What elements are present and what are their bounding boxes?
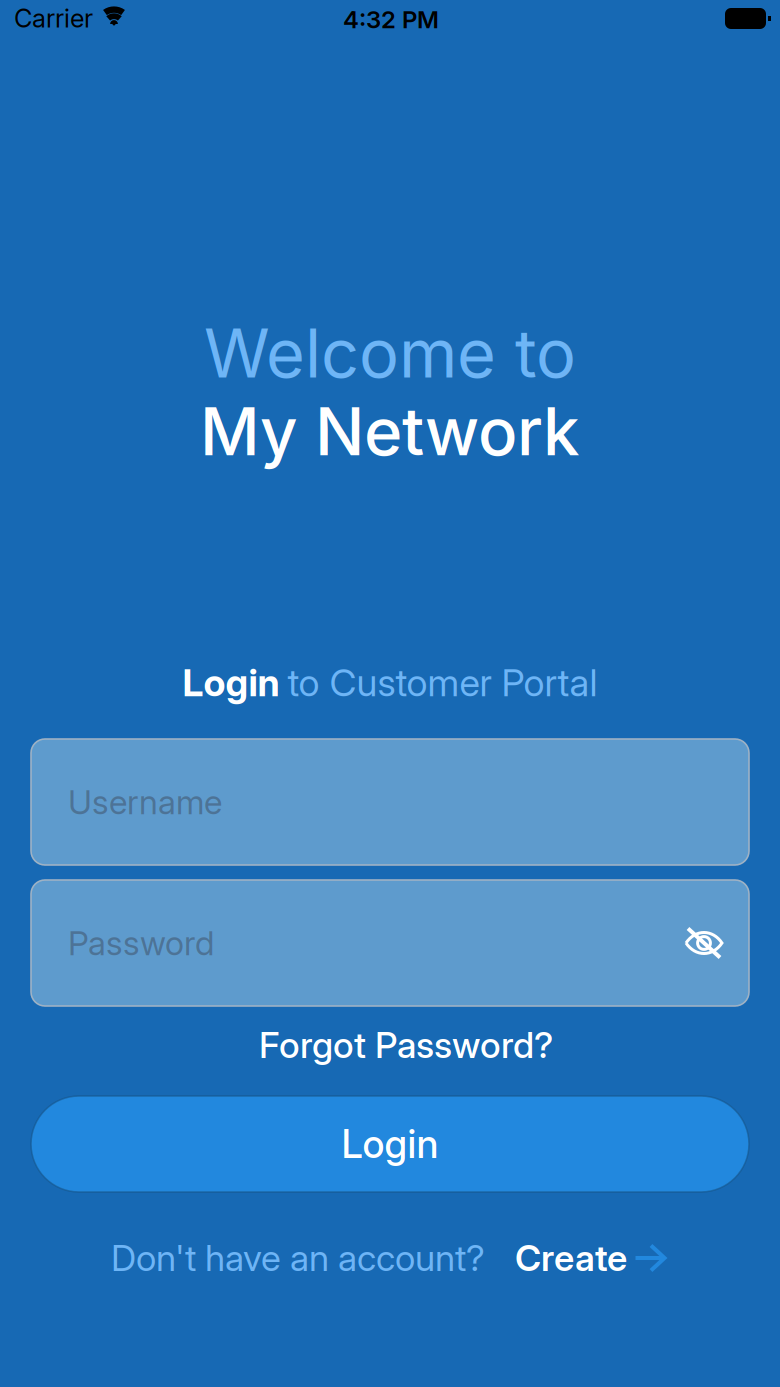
staticText: Welcome to bbox=[204, 313, 576, 394]
staticText: Login bbox=[182, 660, 287, 705]
button[interactable]: Create bbox=[515, 1232, 667, 1284]
staticText: Don't have an account? bbox=[111, 1236, 485, 1280]
staticText: Carrier bbox=[14, 3, 93, 34]
staticText: Password bbox=[68, 923, 214, 963]
button[interactable]: Show password bbox=[684, 924, 724, 962]
staticText: My Network bbox=[200, 392, 580, 471]
staticText: 4:32 PM bbox=[343, 5, 439, 34]
staticText: to Customer Portal bbox=[287, 660, 597, 705]
staticText: Username bbox=[68, 782, 222, 822]
staticText: Create bbox=[515, 1236, 627, 1280]
button[interactable]: Forgot Password? bbox=[16, 1022, 780, 1068]
staticText: Login bbox=[341, 1121, 438, 1167]
button[interactable]: Login bbox=[31, 1096, 749, 1192]
staticText: Forgot Password? bbox=[259, 1023, 553, 1067]
